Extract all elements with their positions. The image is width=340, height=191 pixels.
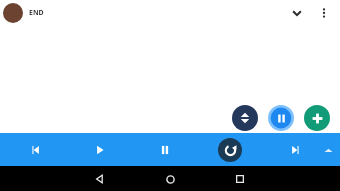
button[interactable]: Play <box>88 138 112 162</box>
button[interactable]: Add <box>304 105 330 131</box>
button[interactable]: Repeat <box>218 138 242 162</box>
button[interactable]: Pause <box>268 105 294 131</box>
button[interactable]: Expand <box>286 2 308 24</box>
staticText: END <box>29 8 44 18</box>
button[interactable]: Home <box>158 167 182 191</box>
button[interactable]: Pause <box>153 138 177 162</box>
button[interactable]: Back <box>88 167 112 191</box>
button[interactable]: Previous <box>24 138 48 162</box>
button[interactable]: Recent apps <box>228 167 252 191</box>
button[interactable]: Sort <box>232 105 258 131</box>
button[interactable]: Account <box>3 3 23 23</box>
button[interactable]: Expand controls <box>319 141 337 159</box>
button[interactable]: More options <box>314 3 334 23</box>
button[interactable]: Next <box>283 138 307 162</box>
